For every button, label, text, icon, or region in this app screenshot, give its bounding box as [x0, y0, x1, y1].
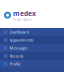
staticText: Appointments — [9, 37, 33, 43]
button[interactable]: Records — [0, 52, 64, 60]
staticText: Records — [9, 53, 23, 59]
staticText: Profile — [9, 61, 20, 67]
button[interactable]: Profile — [0, 60, 64, 68]
button[interactable]: Messages — [0, 44, 64, 52]
staticText: Messages — [9, 45, 27, 51]
button[interactable]: Appointments — [0, 36, 64, 44]
staticText: Dashboard — [9, 29, 28, 35]
staticText: health system — [13, 18, 31, 21]
button[interactable]: Dashboard — [0, 28, 64, 36]
staticText: medex — [13, 9, 36, 18]
